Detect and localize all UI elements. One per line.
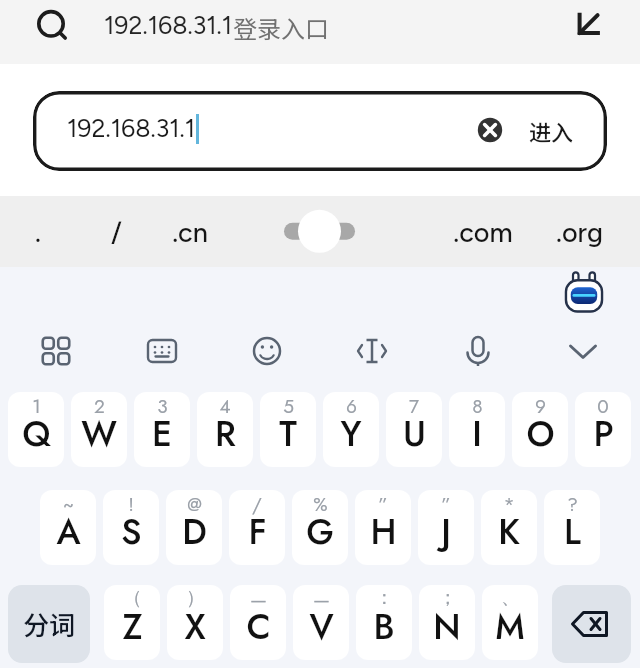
staticText: 登录入口 — [233, 10, 329, 45]
staticText: N — [433, 602, 461, 653]
staticText: ? — [567, 491, 578, 518]
button[interactable]: Hide keyboard — [564, 1, 612, 49]
staticText: @ — [187, 491, 202, 518]
button[interactable]: 5 — [260, 392, 316, 467]
staticText: K — [498, 507, 520, 558]
button[interactable]: 进入 — [518, 105, 584, 157]
staticText: Q — [22, 409, 51, 460]
button[interactable]: / — [229, 490, 285, 565]
staticText: . — [35, 216, 41, 248]
staticText: D — [182, 507, 207, 558]
staticText: ” — [441, 491, 451, 518]
button[interactable]: 4 — [197, 392, 253, 467]
button[interactable]: ~ — [40, 490, 96, 565]
button[interactable]: 1 — [8, 392, 64, 467]
staticText: O — [526, 409, 555, 460]
button[interactable]: 7 — [386, 392, 442, 467]
staticText: L — [564, 507, 581, 558]
button[interactable]: ： — [356, 585, 412, 660]
button[interactable]: 9 — [512, 392, 568, 467]
staticText: * — [503, 491, 515, 518]
staticText: J — [441, 507, 451, 558]
button[interactable]: Clear text — [465, 105, 515, 155]
staticText: G — [306, 507, 334, 558]
staticText: W — [81, 409, 117, 460]
button[interactable]: Move cursor — [346, 325, 398, 377]
button[interactable]: 6 — [323, 392, 379, 467]
staticText: U — [403, 409, 426, 460]
staticText: I — [472, 409, 482, 460]
button[interactable]: ； — [419, 585, 475, 660]
button[interactable]: Backspace — [552, 585, 631, 663]
button[interactable]: 、 — [482, 585, 538, 660]
button[interactable]: Emoji — [241, 325, 293, 377]
staticText: C — [246, 602, 271, 653]
staticText: 0 — [597, 393, 609, 420]
button[interactable]: ” — [355, 490, 411, 565]
staticText: V — [309, 602, 334, 653]
staticText: ” — [378, 491, 388, 518]
button[interactable]: ” — [418, 490, 474, 565]
staticText: .com — [453, 216, 513, 248]
staticText: X — [184, 602, 206, 653]
button[interactable]: 2 — [71, 392, 127, 467]
button[interactable]: .org — [534, 196, 624, 267]
button[interactable]: ） — [167, 585, 223, 660]
staticText: 192.168.31.1 — [104, 10, 233, 40]
staticText: ! — [128, 491, 134, 518]
button[interactable]: 192.168.31.1 — [33, 91, 607, 171]
button[interactable]: 分词 — [8, 585, 90, 663]
button[interactable]: .com — [438, 196, 528, 267]
staticText: 9 — [535, 393, 546, 420]
button[interactable]: Voice input — [452, 325, 504, 377]
button[interactable]: Apps — [30, 325, 82, 377]
button[interactable]: Keyboard layout — [136, 325, 188, 377]
button[interactable]: % — [292, 490, 348, 565]
staticText: .cn — [172, 216, 208, 248]
button[interactable]: @ — [166, 490, 222, 565]
staticText: 1 — [32, 393, 41, 420]
staticText: 7 — [409, 393, 419, 420]
button[interactable]: — — [293, 585, 349, 660]
staticText: 分词 — [23, 605, 76, 643]
staticText: ： — [375, 586, 394, 610]
button[interactable]: / — [71, 196, 161, 267]
staticText: 3 — [157, 393, 168, 420]
staticText: 2 — [94, 393, 105, 420]
staticText: B — [373, 602, 395, 653]
staticText: ； — [438, 586, 457, 610]
button[interactable]: Hide keyboard — [557, 325, 609, 377]
staticText: A — [56, 507, 81, 558]
staticText: S — [121, 507, 142, 558]
button[interactable]: ? — [544, 490, 600, 565]
button[interactable]: ! — [103, 490, 159, 565]
staticText: 8 — [472, 393, 483, 420]
button[interactable]: 8 — [449, 392, 505, 467]
staticText: 4 — [219, 393, 231, 420]
button[interactable]: 0 — [575, 392, 631, 467]
button[interactable]: * — [481, 490, 537, 565]
staticText: （ — [123, 586, 142, 610]
staticText: 192.168.31.1 — [67, 113, 196, 143]
staticText: — — [313, 586, 330, 613]
staticText: 5 — [283, 393, 294, 420]
button[interactable]: Search — [27, 0, 75, 48]
staticText: T — [279, 409, 297, 460]
staticText: M — [495, 602, 525, 653]
button[interactable]: （ — [104, 585, 160, 660]
staticText: / — [111, 216, 122, 248]
button[interactable]: Toggle suffix — [276, 205, 364, 257]
button[interactable]: .cn — [145, 196, 235, 267]
button[interactable]: . — [0, 196, 83, 267]
staticText: ~ — [63, 491, 74, 518]
button[interactable]: — — [230, 585, 286, 660]
staticText: .org — [556, 216, 603, 248]
staticText: P — [593, 409, 614, 460]
staticText: F — [248, 507, 267, 558]
button[interactable]: Assistant — [562, 271, 606, 315]
staticText: % — [313, 491, 328, 518]
button[interactable]: 3 — [134, 392, 190, 467]
staticText: R — [215, 409, 236, 460]
staticText: / — [252, 491, 262, 518]
staticText: E — [152, 409, 172, 460]
